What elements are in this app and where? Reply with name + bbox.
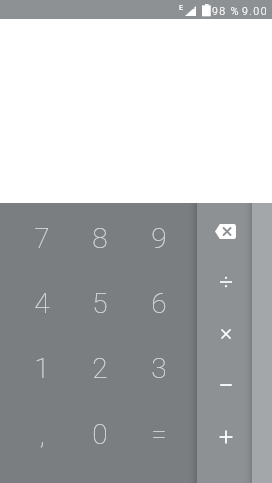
staticText: 1 — [34, 352, 50, 385]
staticText: 6 — [151, 287, 167, 320]
button[interactable]: 6 — [129, 271, 188, 336]
staticText: 98 % — [212, 5, 240, 17]
button[interactable]: 8 — [70, 206, 129, 271]
staticText: 4 — [34, 287, 50, 320]
button[interactable]: Subtract — [199, 359, 252, 411]
button[interactable]: 7 — [12, 206, 71, 271]
staticText: 8 — [92, 222, 108, 255]
button[interactable]: 9 — [129, 206, 188, 271]
button[interactable]: Divide — [199, 256, 252, 308]
staticText: = — [151, 418, 167, 451]
staticText: 9.00 — [242, 5, 268, 17]
button[interactable]: Delete — [199, 205, 252, 257]
staticText: E — [179, 3, 184, 11]
staticText: 0 — [92, 418, 108, 451]
button[interactable]: 4 — [12, 271, 71, 336]
button[interactable]: = — [129, 402, 188, 467]
button[interactable]: 3 — [129, 336, 188, 401]
staticText: 7 — [34, 222, 50, 255]
staticText: 2 — [92, 352, 108, 385]
button[interactable]: Multiply — [199, 308, 252, 360]
button[interactable]: Add — [199, 411, 252, 463]
staticText: 3 — [151, 352, 167, 385]
button[interactable]: 5 — [70, 271, 129, 336]
staticText: 9 — [151, 222, 167, 255]
staticText: , — [39, 418, 45, 451]
button[interactable]: 1 — [12, 336, 71, 401]
staticText: 5 — [92, 287, 108, 320]
button[interactable]: 2 — [70, 336, 129, 401]
button[interactable]: 0 — [70, 402, 129, 467]
